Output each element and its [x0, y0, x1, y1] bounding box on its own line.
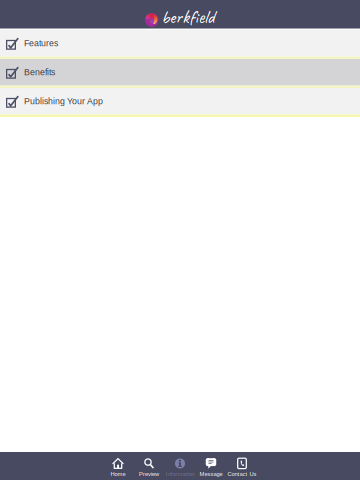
staticText: Contact Us [227, 471, 256, 477]
button[interactable]: Home [102, 452, 133, 480]
staticText: Information [165, 471, 194, 477]
staticText: Features [24, 38, 58, 48]
staticText: Benefits [24, 67, 55, 77]
button[interactable]: Features [0, 30, 360, 56]
staticText: Home [110, 471, 125, 477]
staticText: Message [199, 471, 222, 477]
button[interactable]: Information [164, 452, 195, 480]
button[interactable]: Preview [133, 452, 164, 480]
button[interactable]: Contact Us [226, 452, 257, 480]
button[interactable]: Publishing Your App [0, 88, 360, 114]
button[interactable]: Benefits [0, 59, 360, 85]
staticText: berkfield [161, 4, 215, 29]
staticText: Preview [139, 471, 159, 477]
staticText: Publishing Your App [24, 96, 103, 106]
button[interactable]: Message [195, 452, 226, 480]
